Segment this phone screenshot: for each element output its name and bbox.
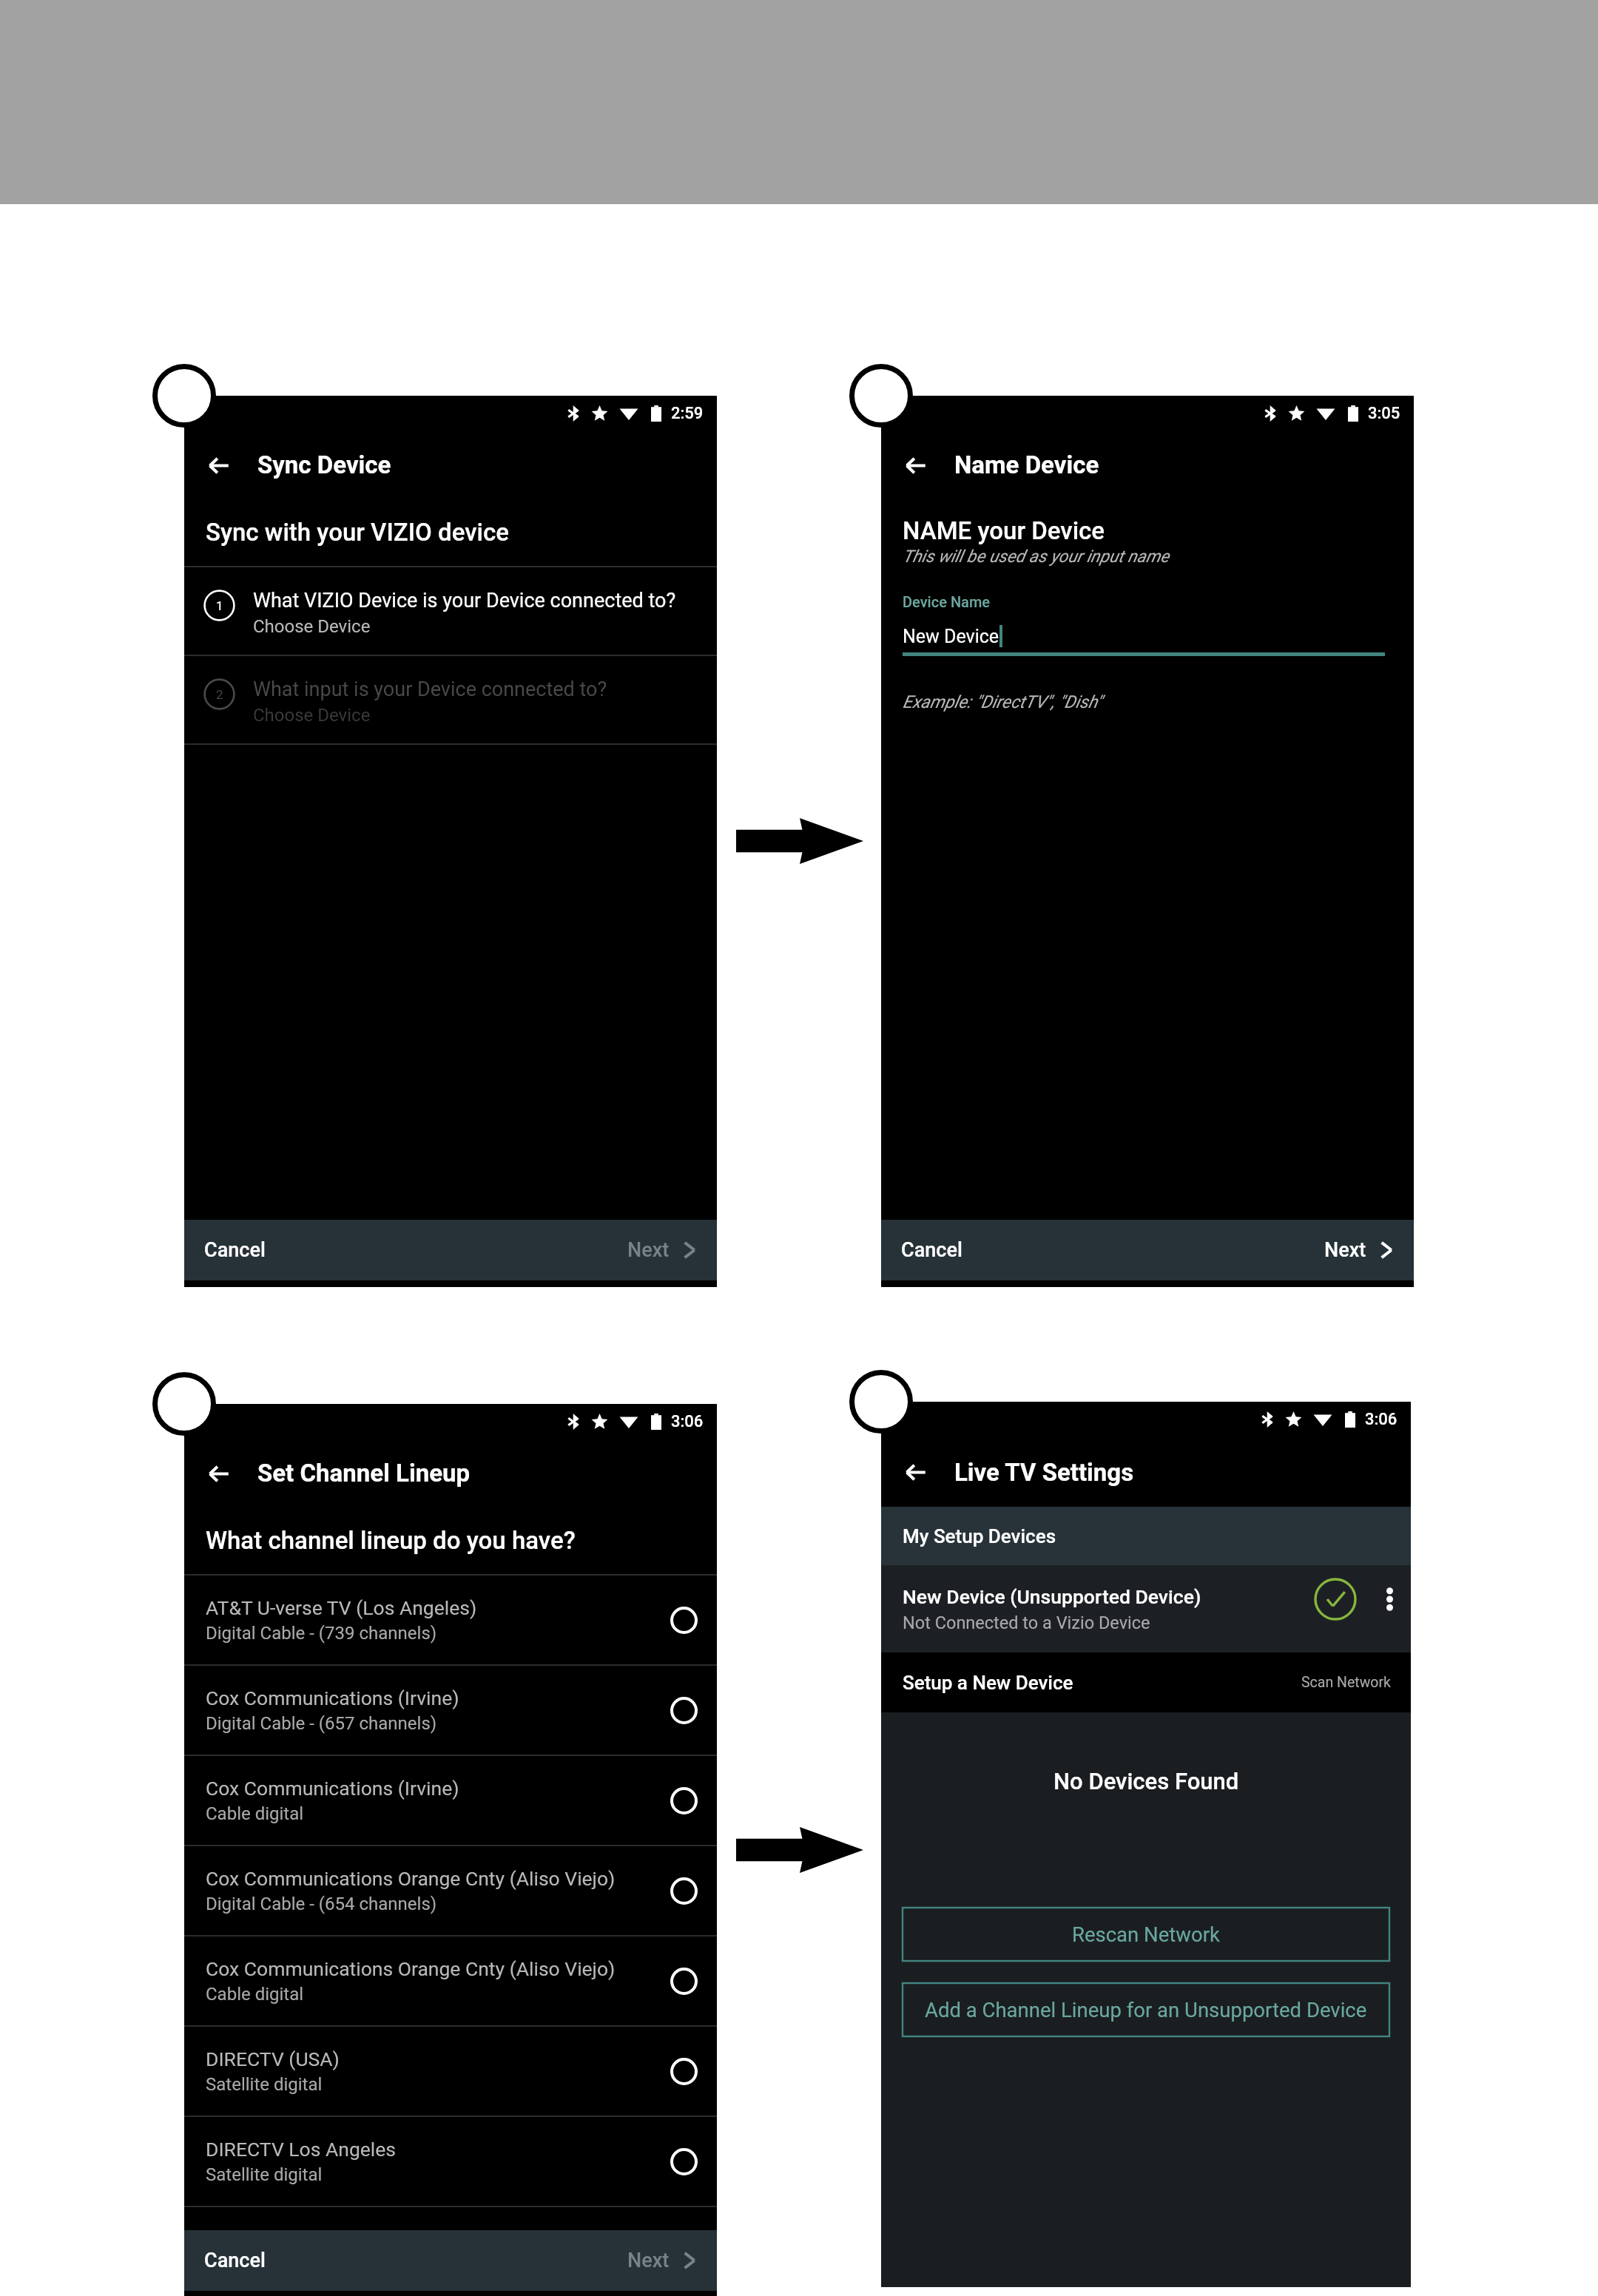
staticText: Cox Communications (Irvine)	[206, 1686, 459, 1709]
staticText: Digital Cable - (657 channels)	[206, 1713, 437, 1734]
button[interactable]: DIRECTV Los Angeles	[184, 2117, 717, 2206]
staticText: Digital Cable - (654 channels)	[206, 1894, 437, 1914]
button[interactable]: Back	[900, 1457, 930, 1487]
staticText: No Devices Found	[1053, 1768, 1239, 1794]
staticText: Name Device	[954, 450, 1099, 479]
staticText: Cable digital	[206, 1803, 304, 1824]
button[interactable]: Cox Communications (Irvine)	[184, 1666, 717, 1755]
staticText: Not Connected to a Vizio Device	[903, 1613, 1150, 1633]
staticText: Cox Communications Orange Cnty (Aliso Vi…	[206, 1957, 616, 1980]
button[interactable]: Cox Communications (Irvine)	[184, 1756, 717, 1845]
button[interactable]: Cancel	[881, 1220, 980, 1280]
button[interactable]: Cox Communications Orange Cnty (Aliso Vi…	[184, 1937, 717, 2025]
staticText: What channel lineup do you have?	[206, 1526, 576, 1555]
staticText: Choose Device	[253, 616, 371, 637]
button[interactable]: Cancel	[184, 2230, 283, 2291]
staticText: Live TV Settings	[954, 1458, 1134, 1487]
button[interactable]: 2	[184, 656, 717, 743]
staticText: Cox Communications (Irvine)	[206, 1777, 459, 1800]
button[interactable]: AT&T U-verse TV (Los Angeles)	[184, 1576, 717, 1664]
staticText: This will be used as your input name	[903, 547, 1170, 567]
staticText: 2	[216, 687, 223, 702]
staticText: Sync Device	[257, 450, 391, 479]
staticText: Setup a New Device	[903, 1672, 1073, 1694]
staticText: 3:06	[1365, 1410, 1398, 1429]
button[interactable]: Back	[900, 450, 930, 480]
staticText: Rescan Network	[1072, 1922, 1220, 1946]
staticText: DIRECTV Los Angeles	[206, 2138, 396, 2161]
button[interactable]: Back	[203, 1459, 233, 1488]
staticText: Choose Device	[253, 705, 371, 726]
staticText: Next	[627, 2249, 670, 2272]
staticText: Digital Cable - (739 channels)	[206, 1623, 437, 1644]
staticText: New Device (Unsupported Device)	[903, 1585, 1201, 1608]
staticText: Satellite digital	[206, 2074, 323, 2095]
button[interactable]: More options	[1379, 1589, 1400, 1610]
staticText: New Device	[903, 626, 999, 647]
staticText: Next	[1324, 1238, 1366, 1262]
staticText: Example: "DirectTV", "Dish"	[903, 692, 1102, 712]
staticText: What VIZIO Device is your Device connect…	[253, 589, 676, 612]
button[interactable]: Next	[1309, 1220, 1414, 1280]
staticText: My Setup Devices	[903, 1525, 1056, 1547]
staticText: Device Name	[903, 593, 991, 610]
button[interactable]: Next	[613, 2230, 717, 2291]
staticText: Add a Channel Lineup for an Unsupported …	[925, 1998, 1367, 2022]
staticText: 3:05	[1368, 404, 1400, 423]
staticText: Cancel	[901, 1238, 962, 1262]
staticText: 3:06	[671, 1412, 704, 1431]
staticText: Sync with your VIZIO device	[206, 518, 509, 547]
staticText: Set Channel Lineup	[257, 1459, 471, 1488]
staticText: DIRECTV (USA)	[206, 2047, 340, 2070]
button[interactable]: Cox Communications Orange Cnty (Aliso Vi…	[184, 1846, 717, 1935]
staticText: NAME your Device	[903, 516, 1105, 545]
staticText: Scan Network	[1301, 1674, 1391, 1691]
staticText: AT&T U-verse TV (Los Angeles)	[206, 1596, 477, 1619]
staticText: 2:59	[671, 404, 704, 423]
staticText: Cancel	[204, 2249, 266, 2272]
button[interactable]: DIRECTV (USA)	[184, 2027, 717, 2116]
button[interactable]: Setup a New Device	[881, 1652, 1411, 1712]
staticText: 1	[216, 598, 223, 613]
staticText: What input is your Device connected to?	[253, 678, 607, 701]
button[interactable]: New Device (Unsupported Device)	[881, 1565, 1411, 1652]
button[interactable]: Next	[613, 1220, 717, 1280]
staticText: Satellite digital	[206, 2164, 323, 2185]
staticText: Cox Communications Orange Cnty (Aliso Vi…	[206, 1867, 616, 1890]
staticText: Cancel	[204, 1238, 266, 1262]
button[interactable]: Back	[203, 450, 233, 480]
staticText: Next	[627, 1238, 670, 1262]
button[interactable]: Add a Channel Lineup for an Unsupported …	[903, 1983, 1389, 2036]
staticText: Cable digital	[206, 1984, 304, 2005]
button[interactable]: Cancel	[184, 1220, 283, 1280]
button[interactable]: 1	[184, 567, 717, 655]
button[interactable]: Rescan Network	[903, 1908, 1389, 1961]
